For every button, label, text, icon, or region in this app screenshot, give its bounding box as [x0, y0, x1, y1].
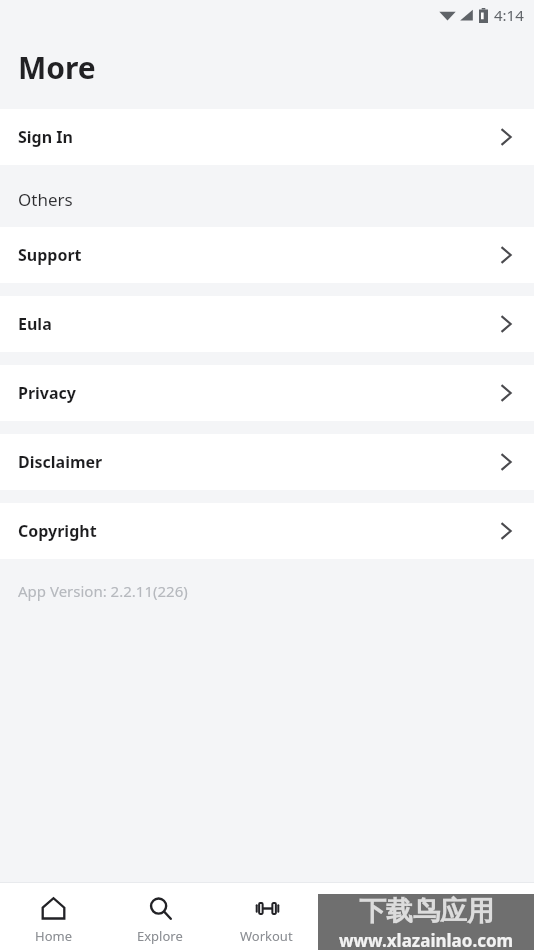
button[interactable]: Copyright — [0, 503, 534, 559]
staticText: App Version: 2.2.11(226) — [18, 581, 188, 601]
staticText: Support — [18, 244, 82, 266]
staticText: Home — [35, 927, 72, 945]
button[interactable]: Home — [0, 883, 106, 950]
staticText: More — [464, 927, 497, 945]
staticText: Others — [18, 188, 73, 211]
other: Workout — [254, 895, 281, 922]
staticText: 下载鸟应用 — [359, 894, 494, 928]
other: Found — [361, 895, 388, 922]
staticText: 4:14 — [494, 5, 524, 25]
button[interactable]: Privacy — [0, 365, 534, 421]
staticText: More — [18, 47, 96, 88]
staticText: Workout — [240, 927, 293, 945]
button[interactable]: Workout — [213, 883, 320, 950]
staticText: Sign In — [18, 126, 73, 148]
button[interactable]: Disclaimer — [0, 434, 534, 490]
button[interactable]: Explore — [106, 883, 213, 950]
staticText: Found — [354, 927, 393, 945]
staticText: www.xlazainlao.com — [339, 929, 514, 950]
other: Explore — [147, 895, 174, 922]
other: Home — [40, 895, 67, 922]
button[interactable]: More — [427, 883, 534, 950]
staticText: Copyright — [18, 520, 97, 542]
staticText: Explore — [137, 927, 183, 945]
button[interactable]: Eula — [0, 296, 534, 352]
staticText: Disclaimer — [18, 451, 103, 473]
button[interactable]: Found — [320, 883, 427, 950]
staticText: Eula — [18, 313, 52, 335]
other: More — [468, 895, 495, 922]
button[interactable]: Support — [0, 227, 534, 283]
staticText: Privacy — [18, 382, 76, 404]
button[interactable]: Sign In — [0, 109, 534, 165]
